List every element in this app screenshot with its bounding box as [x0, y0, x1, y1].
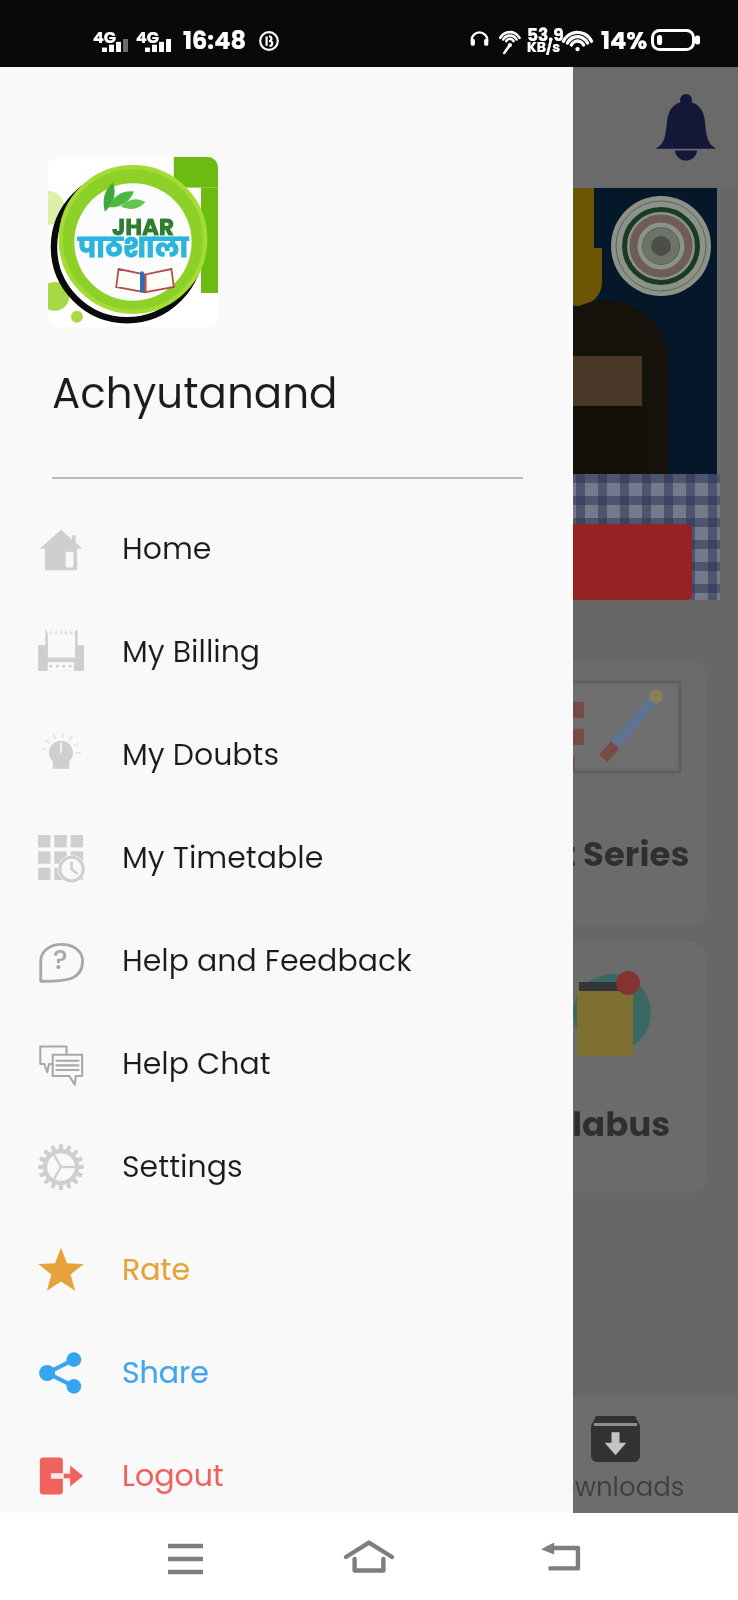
staticText: ? — [53, 941, 68, 979]
staticText: My Billing — [122, 631, 261, 673]
button[interactable]: Recent apps — [125, 1513, 245, 1600]
staticText: ownloads — [558, 1469, 685, 1505]
button[interactable]: My Timetable — [0, 806, 573, 909]
button[interactable]: Share — [0, 1321, 573, 1424]
button[interactable]: My Billing — [0, 600, 573, 703]
staticText: 16:48 — [183, 24, 246, 58]
staticText: My Doubts — [122, 734, 280, 776]
staticText: 14% — [601, 24, 648, 58]
button[interactable]: Rate — [0, 1218, 573, 1321]
staticText: Share — [122, 1352, 209, 1394]
staticText: Logout — [122, 1455, 224, 1497]
staticText: Achyutanand — [52, 364, 338, 423]
button[interactable]: My Doubts — [0, 703, 573, 806]
staticText: 4G — [93, 26, 117, 48]
staticText: Help Chat — [122, 1043, 271, 1085]
staticText: t Series — [562, 830, 690, 878]
button[interactable]: ? — [0, 909, 573, 1012]
button[interactable]: Logout — [0, 1424, 573, 1527]
staticText: पाठशाला — [78, 229, 189, 267]
staticText: 53.9 — [527, 23, 564, 47]
button[interactable]: Back — [503, 1513, 623, 1600]
button[interactable]: Home — [0, 497, 573, 600]
staticText: Rate — [122, 1249, 191, 1291]
staticText: JHAR — [112, 211, 175, 243]
staticText: Home — [122, 528, 212, 570]
staticText: Help and Feedback — [122, 940, 412, 982]
button[interactable]: Home — [309, 1513, 429, 1600]
staticText: Settings — [122, 1146, 243, 1188]
button[interactable]: Settings — [0, 1115, 573, 1218]
staticText: My Timetable — [122, 837, 324, 879]
staticText: KB/s — [527, 37, 561, 57]
staticText: llabus — [562, 1100, 671, 1148]
staticText: 4G — [136, 26, 160, 48]
button[interactable]: Help Chat — [0, 1012, 573, 1115]
